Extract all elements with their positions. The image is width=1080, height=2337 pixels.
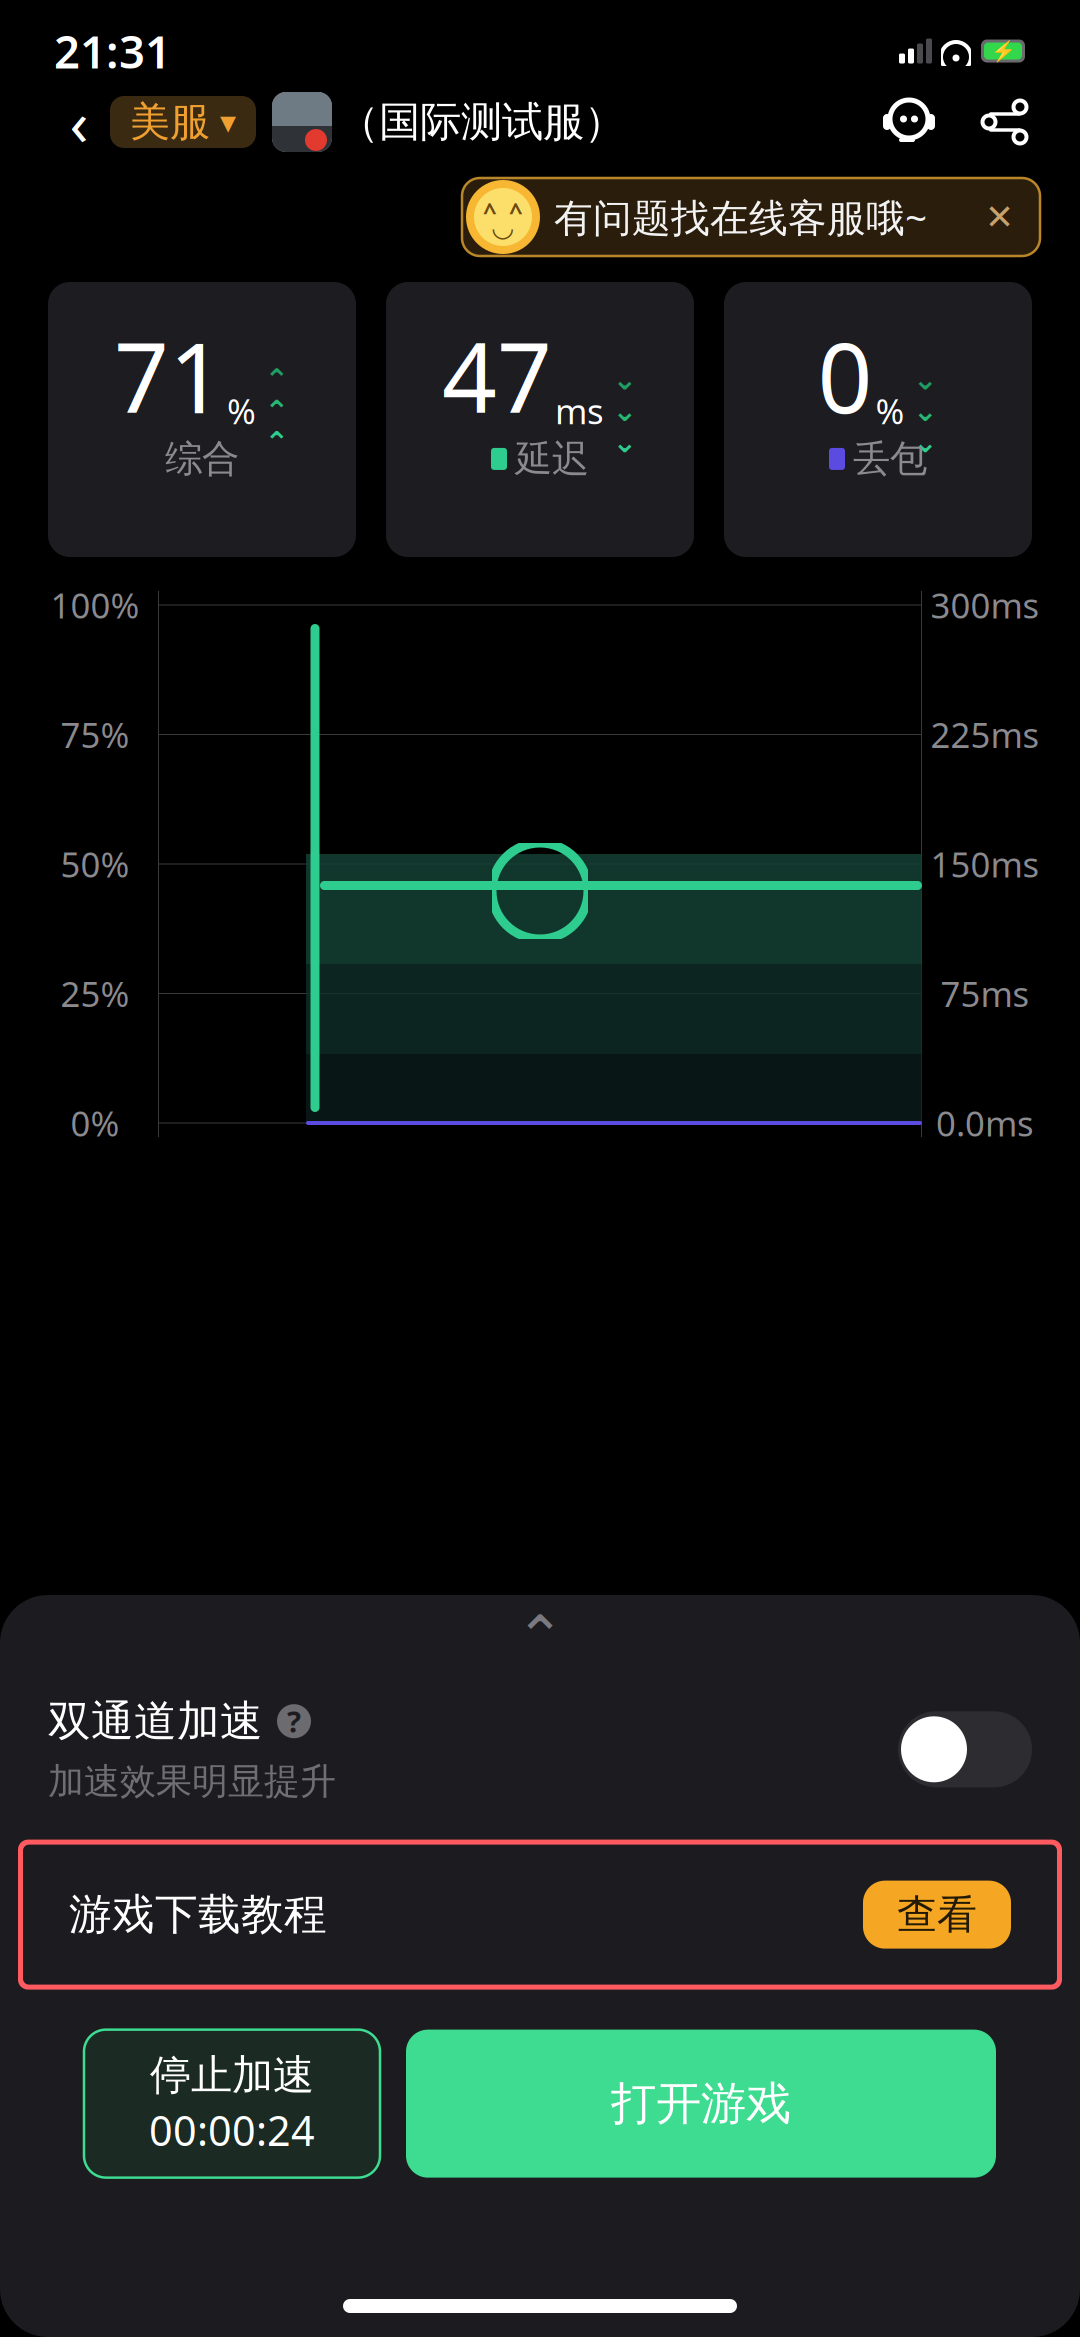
- staticText: ms: [555, 388, 604, 434]
- staticText: ⌃: [264, 363, 289, 396]
- staticText: 游戏下载教程: [69, 1888, 327, 1941]
- staticText: ✕: [985, 197, 1014, 237]
- staticText: 停止加速: [150, 2050, 314, 2101]
- button[interactable]: 游戏下载教程: [18, 1840, 1062, 1990]
- staticText: ⌄: [612, 425, 637, 459]
- staticText: 加速效果明显提升: [48, 1759, 336, 1804]
- staticText: ⌃: [264, 425, 289, 459]
- button[interactable]: 在线客服: [882, 95, 936, 149]
- staticText: ⚡: [990, 40, 1015, 62]
- staticText: 25%: [60, 970, 129, 1016]
- staticText: ⌃: [264, 394, 289, 427]
- staticText: 00:00:24: [149, 2103, 315, 2157]
- button[interactable]: 停止加速: [84, 2030, 380, 2178]
- staticText: 查看: [897, 1890, 977, 1939]
- button[interactable]: 双通道加速开关: [898, 1711, 1032, 1787]
- button[interactable]: 展开: [495, 1609, 585, 1665]
- staticText: 21:31: [54, 21, 171, 81]
- staticText: %: [875, 388, 904, 434]
- staticText: 有问题找在线客服哦~: [554, 191, 927, 243]
- staticText: ⌄: [612, 394, 637, 427]
- staticText: 47: [442, 312, 552, 440]
- staticText: 丢包: [853, 436, 927, 482]
- button[interactable]: 美服: [110, 96, 256, 148]
- staticText: 延迟: [515, 436, 589, 482]
- staticText: ◡: [492, 212, 513, 242]
- staticText: ⌄: [913, 363, 938, 396]
- staticText: ▾: [220, 104, 236, 140]
- staticText: 0.0ms: [936, 1100, 1034, 1146]
- staticText: 双通道加速: [48, 1695, 263, 1747]
- staticText: ^: [483, 195, 497, 227]
- staticText: 225ms: [930, 711, 1039, 757]
- staticText: 0%: [70, 1100, 119, 1146]
- staticText: 综合: [165, 436, 239, 482]
- button[interactable]: 返回: [48, 91, 110, 153]
- staticText: 0: [817, 312, 872, 440]
- staticText: 75ms: [940, 970, 1029, 1016]
- staticText: 50%: [60, 841, 129, 887]
- button[interactable]: 打开游戏: [406, 2030, 996, 2178]
- staticText: ⌄: [913, 394, 938, 427]
- button[interactable]: 分享: [978, 95, 1032, 149]
- staticText: 美服: [130, 97, 210, 146]
- staticText: ⌃: [515, 1604, 564, 1670]
- staticText: ?: [287, 1702, 301, 1741]
- staticText: ‹: [69, 81, 88, 163]
- staticText: 150ms: [930, 841, 1039, 887]
- staticText: ⌄: [612, 363, 637, 396]
- staticText: 71: [114, 312, 224, 440]
- staticText: 100%: [50, 582, 139, 628]
- staticText: ^: [509, 195, 523, 227]
- button[interactable]: ^: [462, 178, 1040, 256]
- staticText: 75%: [60, 711, 129, 757]
- staticText: ⌄: [913, 425, 938, 459]
- staticText: （国际测试服）: [338, 97, 625, 147]
- staticText: 打开游戏: [611, 2076, 791, 2131]
- staticText: %: [227, 388, 256, 434]
- staticText: 300ms: [930, 582, 1039, 628]
